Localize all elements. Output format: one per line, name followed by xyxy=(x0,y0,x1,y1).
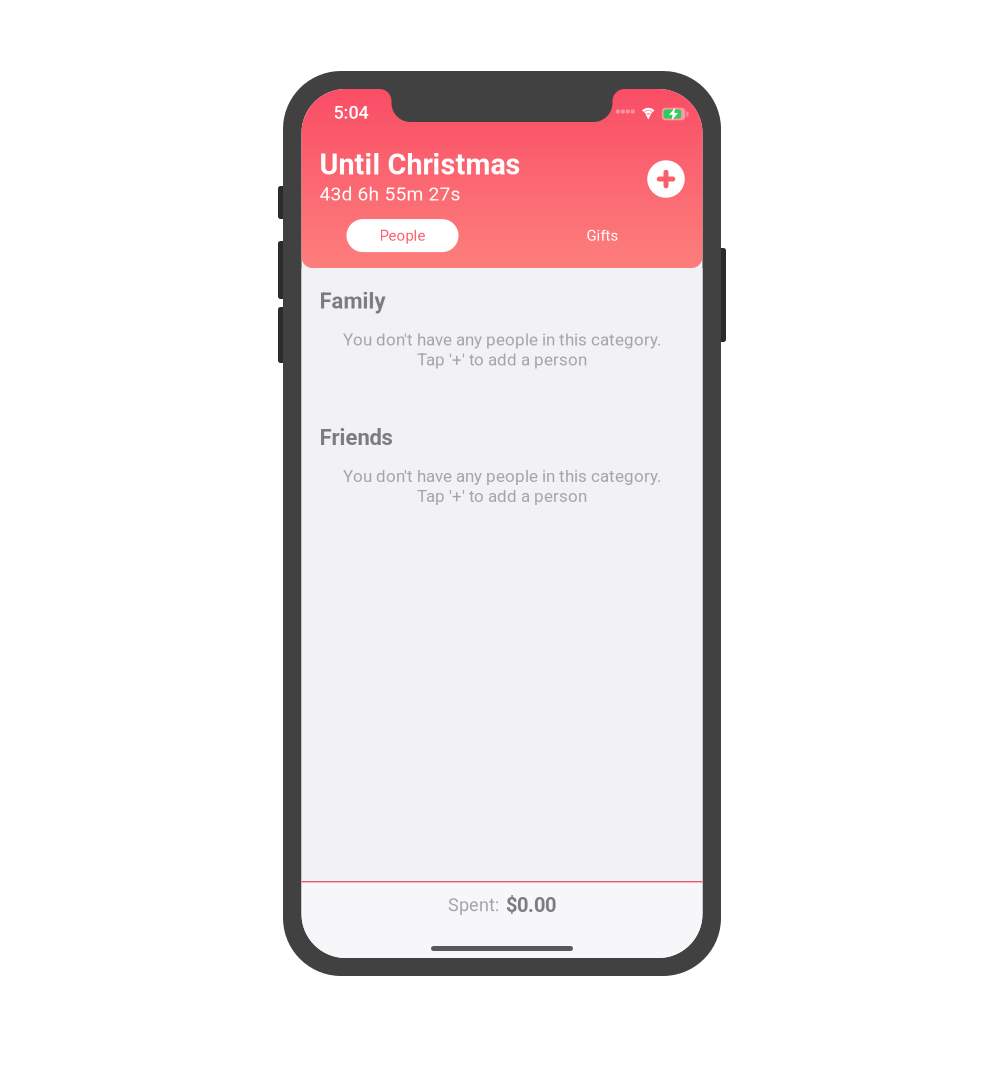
staticText: Tap '+' to add a person xyxy=(417,350,587,369)
staticText: Friends xyxy=(319,425,392,450)
staticText: Until Christmas xyxy=(319,148,520,182)
staticText: Spent: xyxy=(448,895,499,916)
staticText: You don't have any people in this catego… xyxy=(343,466,661,486)
button[interactable]: Gifts xyxy=(546,219,658,252)
button[interactable]: People xyxy=(346,219,458,252)
staticText: Tap '+' to add a person xyxy=(417,486,587,506)
staticText: People xyxy=(379,227,425,244)
staticText: Family xyxy=(319,288,385,314)
staticText: 5:04 xyxy=(333,102,368,123)
staticText: $0.00 xyxy=(506,893,556,917)
staticText: 43d 6h 55m 27s xyxy=(319,183,460,205)
staticText: You don't have any people in this catego… xyxy=(343,330,661,350)
staticText: Gifts xyxy=(586,227,618,244)
button[interactable]: Add person xyxy=(641,154,685,198)
